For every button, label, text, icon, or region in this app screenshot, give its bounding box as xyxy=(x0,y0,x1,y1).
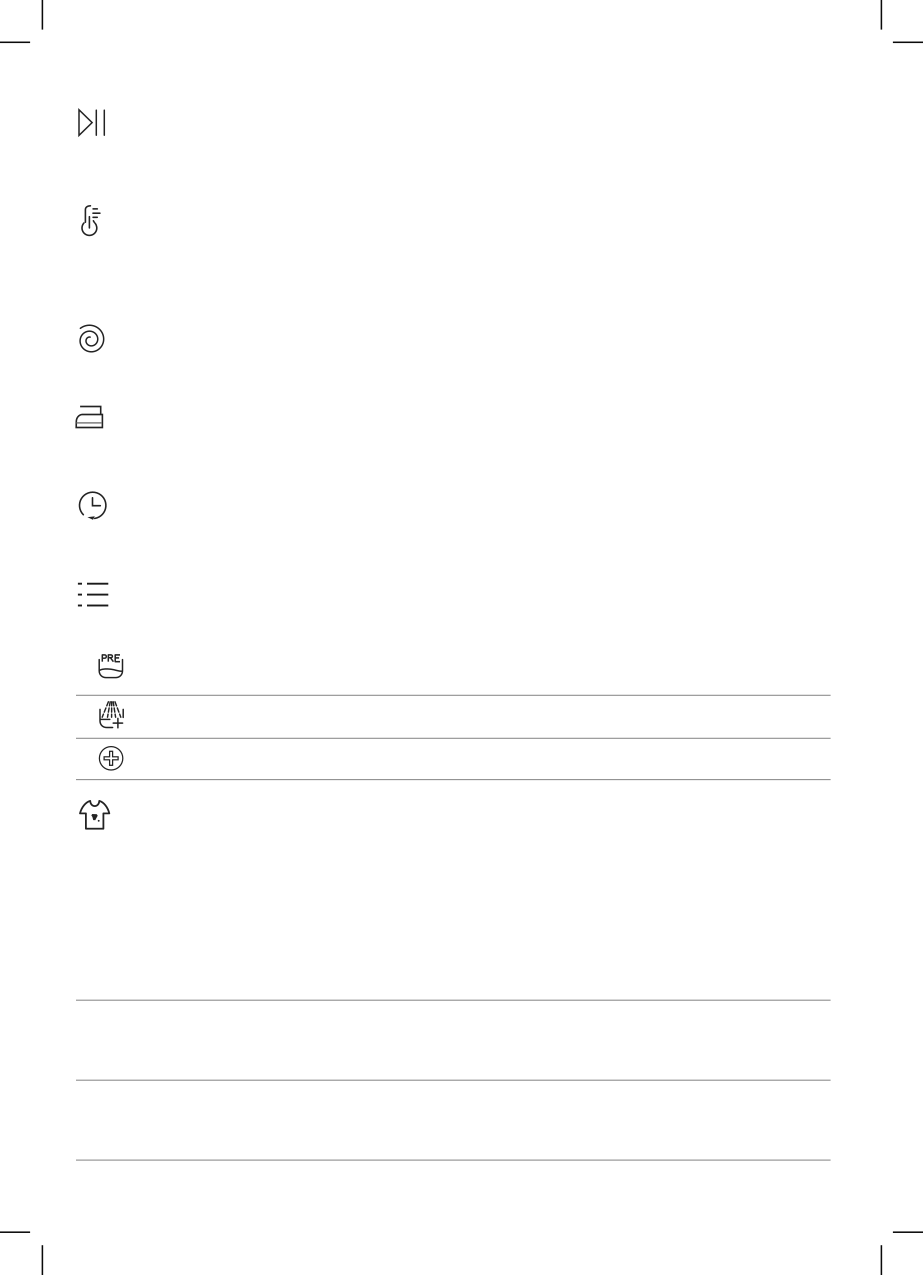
button[interactable]: Prewash xyxy=(76,653,831,695)
button[interactable]: Extra rinse xyxy=(76,695,831,738)
button[interactable]: Anti-crease xyxy=(76,738,831,780)
